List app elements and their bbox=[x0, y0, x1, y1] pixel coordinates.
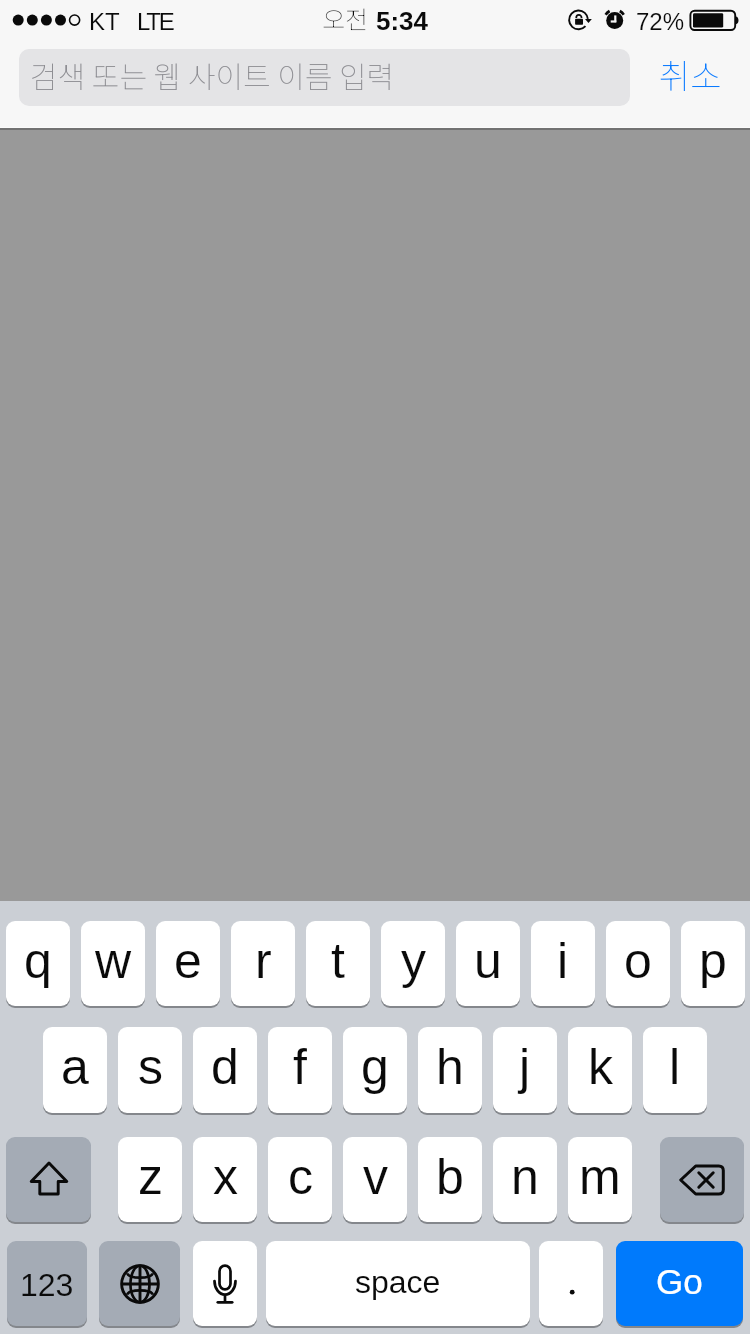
button[interactable]: v bbox=[343, 1137, 407, 1222]
staticText: 취소 bbox=[659, 50, 722, 99]
staticText: j bbox=[519, 1039, 531, 1095]
button[interactable]: m bbox=[568, 1137, 632, 1222]
staticText: n bbox=[511, 1149, 539, 1205]
staticText: t bbox=[331, 933, 345, 989]
button[interactable]: e bbox=[156, 921, 220, 1006]
staticText: x bbox=[213, 1149, 238, 1205]
staticText: space bbox=[355, 1264, 441, 1300]
button[interactable]: c bbox=[268, 1137, 332, 1222]
staticText: p bbox=[699, 933, 727, 989]
button[interactable]: t bbox=[306, 921, 370, 1006]
staticText: i bbox=[557, 933, 569, 989]
button[interactable]: h bbox=[418, 1027, 482, 1113]
staticText: g bbox=[361, 1039, 389, 1095]
staticText: d bbox=[211, 1039, 239, 1095]
button[interactable]: z bbox=[118, 1137, 182, 1222]
button[interactable]: Period bbox=[539, 1241, 603, 1326]
button[interactable]: u bbox=[456, 921, 520, 1006]
staticText: e bbox=[174, 933, 202, 989]
button[interactable]: j bbox=[493, 1027, 557, 1113]
staticText: 123 bbox=[20, 1267, 74, 1303]
button[interactable]: s bbox=[118, 1027, 182, 1113]
button[interactable]: Backspace bbox=[660, 1137, 744, 1222]
staticText: 5:34 bbox=[376, 6, 429, 35]
button[interactable]: d bbox=[193, 1027, 257, 1113]
button[interactable]: g bbox=[343, 1027, 407, 1113]
staticText: a bbox=[61, 1039, 89, 1095]
button[interactable]: 검색 또는 웹 사이트 이름 입력 bbox=[19, 49, 630, 106]
staticText: k bbox=[588, 1039, 613, 1095]
staticText: h bbox=[436, 1039, 464, 1095]
button[interactable]: f bbox=[268, 1027, 332, 1113]
button[interactable]: x bbox=[193, 1137, 257, 1222]
staticText: LTE bbox=[137, 8, 173, 35]
button[interactable]: a bbox=[43, 1027, 107, 1113]
staticText: m bbox=[579, 1149, 621, 1205]
button[interactable]: o bbox=[606, 921, 670, 1006]
button[interactable]: w bbox=[81, 921, 145, 1006]
staticText: 오전 bbox=[322, 0, 369, 36]
staticText: o bbox=[624, 933, 652, 989]
button[interactable]: Go bbox=[616, 1241, 743, 1326]
staticText: 검색 또는 웹 사이트 이름 입력 bbox=[30, 53, 395, 96]
button[interactable]: Switch keyboard language bbox=[99, 1241, 180, 1326]
staticText: 72% bbox=[636, 8, 685, 35]
staticText: KT bbox=[89, 8, 120, 35]
staticText: Go bbox=[656, 1262, 703, 1301]
staticText: q bbox=[24, 933, 52, 989]
button[interactable]: space bbox=[266, 1241, 530, 1326]
staticText: u bbox=[474, 933, 502, 989]
button[interactable]: 취소 bbox=[640, 50, 740, 107]
staticText: s bbox=[138, 1039, 163, 1095]
button[interactable]: r bbox=[231, 921, 295, 1006]
button[interactable]: i bbox=[531, 921, 595, 1006]
staticText: z bbox=[138, 1149, 163, 1205]
button[interactable]: b bbox=[418, 1137, 482, 1222]
staticText: c bbox=[288, 1149, 313, 1205]
staticText: v bbox=[363, 1149, 388, 1205]
button[interactable]: 123 bbox=[7, 1241, 87, 1326]
staticText: b bbox=[436, 1149, 464, 1205]
button[interactable]: n bbox=[493, 1137, 557, 1222]
button[interactable]: Dictation bbox=[193, 1241, 257, 1326]
staticText: l bbox=[669, 1039, 681, 1095]
button[interactable]: k bbox=[568, 1027, 632, 1113]
button[interactable]: p bbox=[681, 921, 745, 1006]
staticText: f bbox=[293, 1039, 307, 1095]
button[interactable]: Shift bbox=[6, 1137, 91, 1222]
button[interactable]: q bbox=[6, 921, 70, 1006]
button[interactable]: y bbox=[381, 921, 445, 1006]
button[interactable]: l bbox=[643, 1027, 707, 1113]
staticText: r bbox=[255, 933, 272, 989]
staticText: y bbox=[401, 933, 426, 989]
staticText: w bbox=[95, 933, 132, 989]
